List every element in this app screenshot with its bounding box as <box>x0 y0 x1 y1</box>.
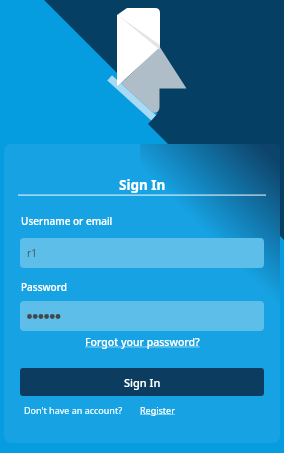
staticText: Sign In <box>119 176 166 194</box>
staticText: r1 <box>27 246 37 260</box>
staticText: Sign In <box>124 375 161 390</box>
staticText: Password <box>21 280 67 294</box>
staticText: Register <box>140 404 175 416</box>
staticText: Don't have an account? <box>24 404 123 416</box>
button[interactable] <box>20 301 264 331</box>
staticText: Forgot your password? <box>85 335 200 349</box>
button[interactable]: r1 <box>20 238 264 268</box>
button[interactable]: Sign In <box>20 368 264 396</box>
button[interactable]: Forgot your password? <box>85 335 200 349</box>
staticText: Username or email <box>21 214 113 228</box>
button[interactable]: Register <box>140 404 175 416</box>
